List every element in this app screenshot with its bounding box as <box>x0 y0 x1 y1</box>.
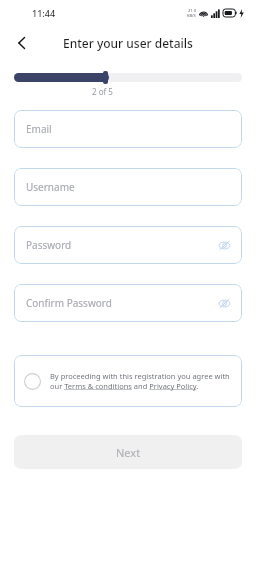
button[interactable]: By proceeding with this registration you… <box>14 355 242 407</box>
button[interactable]: Back <box>8 29 36 57</box>
button[interactable]: Show password <box>214 293 234 313</box>
staticText: Email <box>26 122 52 136</box>
staticText: Confirm Password <box>26 296 112 310</box>
staticText: Password <box>26 238 72 252</box>
staticText: Username <box>26 180 75 194</box>
button[interactable]: Confirm Password <box>14 284 242 322</box>
button[interactable]: Email <box>14 110 242 148</box>
button[interactable]: Show password <box>214 235 234 255</box>
button[interactable]: Password <box>14 226 242 264</box>
staticText: 11:44 <box>32 7 56 19</box>
staticText: 21.0 <box>188 8 196 13</box>
button[interactable]: Username <box>14 168 242 206</box>
staticText: 2 of 5 <box>92 86 113 97</box>
staticText: By proceeding with this registration you… <box>50 371 232 391</box>
staticText: KB/S <box>187 13 196 18</box>
staticText: Enter your user details <box>63 35 193 51</box>
staticText: Next <box>116 445 141 460</box>
button[interactable]: Next <box>14 435 242 469</box>
